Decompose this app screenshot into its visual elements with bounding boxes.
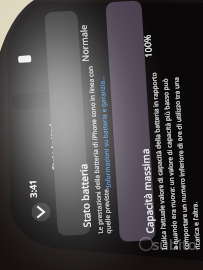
other: Battery health screen [0,0,203,270]
